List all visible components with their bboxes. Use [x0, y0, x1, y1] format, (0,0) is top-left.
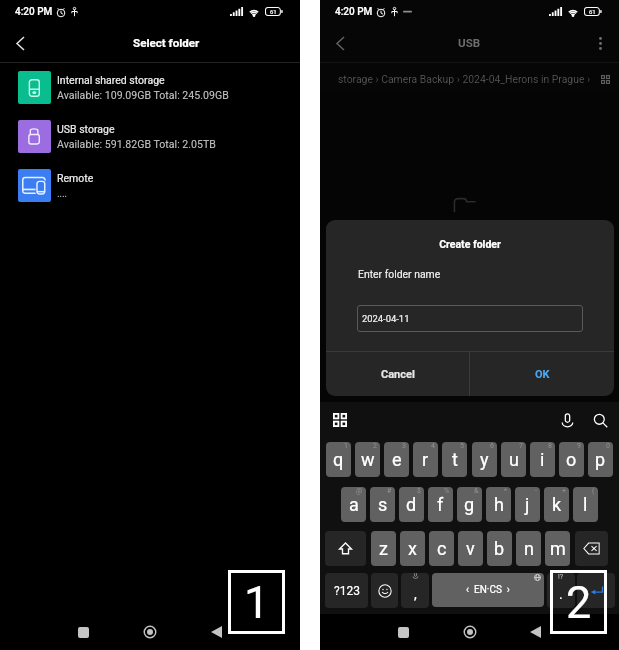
staticText: f — [437, 494, 444, 515]
button[interactable]: s — [370, 487, 395, 522]
staticText: 1 — [244, 576, 270, 629]
button[interactable]: . — [547, 573, 575, 608]
staticText: % — [444, 487, 450, 495]
button[interactable]: i — [530, 442, 555, 477]
staticText: n — [524, 538, 534, 559]
staticText: @ — [356, 487, 363, 495]
button[interactable]: b — [487, 531, 512, 566]
button[interactable]: ‹ EN·CS › — [432, 573, 544, 607]
button[interactable]: Enter — [577, 573, 615, 608]
staticText: z — [379, 538, 388, 559]
staticText: ‥‥ — [57, 187, 67, 199]
staticText: Available: 591.82GB Total: 2.05TB — [57, 138, 216, 150]
button[interactable]: Back — [519, 616, 551, 648]
button[interactable]: Back — [325, 28, 355, 58]
button[interactable]: Back — [5, 28, 35, 58]
staticText: Internal shared storage — [57, 74, 165, 86]
button[interactable]: k — [544, 487, 569, 522]
staticText: * — [504, 487, 508, 495]
button[interactable]: Recents — [387, 616, 419, 648]
button[interactable]: r — [413, 442, 438, 477]
staticText: + — [562, 487, 566, 495]
staticText: 4:20 PM — [335, 6, 373, 18]
staticText: m — [550, 538, 566, 559]
staticText: r — [422, 449, 429, 470]
button[interactable]: Shift — [325, 531, 366, 566]
button[interactable]: Remote — [0, 161, 300, 210]
staticText: storage › Camera Backup › 2024-04_Herons… — [338, 73, 591, 85]
button[interactable]: a — [341, 487, 366, 522]
button[interactable]: OK — [470, 352, 614, 396]
button[interactable]: o — [559, 442, 584, 477]
button[interactable]: y — [472, 442, 497, 477]
button[interactable]: g — [457, 487, 482, 522]
button[interactable]: u — [501, 442, 526, 477]
button[interactable]: v — [458, 531, 483, 566]
button[interactable]: , — [401, 573, 429, 608]
button[interactable]: Keyboard layouts — [327, 407, 353, 433]
staticText: l — [583, 494, 588, 515]
staticText: k — [552, 494, 562, 515]
staticText: Remote — [57, 172, 94, 184]
button[interactable]: Search — [587, 407, 613, 433]
button[interactable]: q — [326, 442, 351, 477]
staticText: c — [437, 538, 447, 559]
staticText: 7 — [519, 442, 523, 450]
staticText: 4:20 PM — [15, 6, 53, 18]
button[interactable]: Recents — [67, 616, 99, 648]
button[interactable]: l — [573, 487, 598, 522]
staticText: g — [464, 494, 475, 515]
button[interactable]: Grid view — [595, 69, 615, 89]
button[interactable]: Cancel — [326, 352, 469, 396]
staticText: OK — [535, 368, 550, 381]
button[interactable]: n — [516, 531, 541, 566]
button[interactable]: ?123 — [325, 573, 368, 608]
staticText: # — [387, 487, 392, 495]
staticText: 61 — [589, 8, 596, 15]
staticText: j — [525, 494, 530, 515]
staticText: s — [378, 494, 388, 515]
button[interactable]: Emoji — [371, 573, 398, 608]
staticText: o — [566, 449, 577, 470]
button[interactable]: z — [371, 531, 396, 566]
staticText: 1 — [344, 442, 348, 450]
button[interactable]: Voice input — [554, 407, 580, 433]
button[interactable]: f — [428, 487, 453, 522]
staticText: 0 — [606, 442, 610, 450]
button[interactable]: Home — [134, 616, 166, 648]
button[interactable]: h — [486, 487, 511, 522]
staticText: ‹ EN·CS › — [466, 584, 510, 596]
button[interactable]: Home — [454, 616, 486, 648]
staticText: $ — [417, 487, 421, 495]
button[interactable]: p — [588, 442, 613, 477]
staticText: 6 — [490, 442, 494, 450]
staticText: USB — [458, 36, 481, 50]
button[interactable]: m — [545, 531, 570, 566]
button[interactable]: t — [442, 442, 467, 477]
button[interactable]: Internal shared storage — [0, 63, 300, 112]
staticText: Cancel — [381, 368, 415, 381]
button[interactable]: Back — [200, 616, 232, 648]
button[interactable]: c — [429, 531, 454, 566]
staticText: v — [466, 538, 475, 559]
staticText: 3 — [402, 442, 406, 450]
staticText: Select folder — [133, 36, 200, 50]
button[interactable]: Backspace — [575, 531, 608, 566]
button[interactable]: e — [384, 442, 409, 477]
staticText: !? — [558, 573, 564, 581]
staticText: q — [333, 449, 344, 470]
button[interactable]: More options — [586, 29, 614, 57]
button[interactable]: USB storage — [0, 112, 300, 161]
staticText: Available: 109.09GB Total: 245.09GB — [57, 89, 229, 101]
staticText: u — [509, 449, 519, 470]
button[interactable]: 2024-04-11 — [357, 305, 583, 332]
button[interactable]: w — [355, 442, 380, 477]
staticText: ?123 — [334, 584, 360, 598]
button[interactable]: d — [399, 487, 424, 522]
button[interactable]: x — [400, 531, 425, 566]
button[interactable]: j — [515, 487, 540, 522]
staticText: i — [540, 449, 545, 470]
staticText: b — [494, 538, 505, 559]
staticText: 2 — [373, 442, 377, 450]
staticText: p — [595, 449, 606, 470]
